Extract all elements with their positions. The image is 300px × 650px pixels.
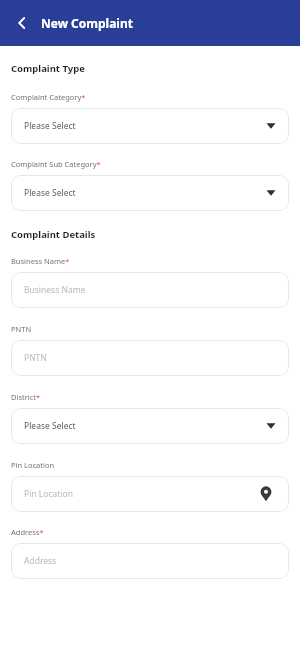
staticText: New Complaint [41,15,133,31]
staticText: Complaint Category* [11,92,86,102]
button[interactable]: Please Select [11,408,289,444]
staticText: PNTN [11,324,32,334]
staticText: Complaint Sub Category* [11,159,101,169]
staticText: PNTN [24,352,276,364]
staticText: Complaint Details [11,228,96,241]
staticText: Please Select [24,187,266,199]
button[interactable]: Pin Location [11,476,289,512]
staticText: Please Select [24,420,266,432]
button[interactable]: Address [11,543,289,579]
button[interactable]: Business Name [11,272,289,308]
staticText: Complaint Type [11,62,85,75]
button[interactable]: Back [10,11,34,35]
staticText: Address* [11,527,44,537]
staticText: Address [24,555,276,567]
button[interactable]: PNTN [11,340,289,376]
staticText: Business Name [24,284,276,296]
staticText: District* [11,392,41,402]
staticText: Pin Location [24,488,256,500]
staticText: Please Select [24,120,266,132]
button[interactable]: Pick location on map [256,484,276,504]
button[interactable]: Please Select [11,175,289,211]
staticText: Pin Location [11,460,55,470]
staticText: Business Name* [11,256,70,266]
button[interactable]: Please Select [11,108,289,144]
